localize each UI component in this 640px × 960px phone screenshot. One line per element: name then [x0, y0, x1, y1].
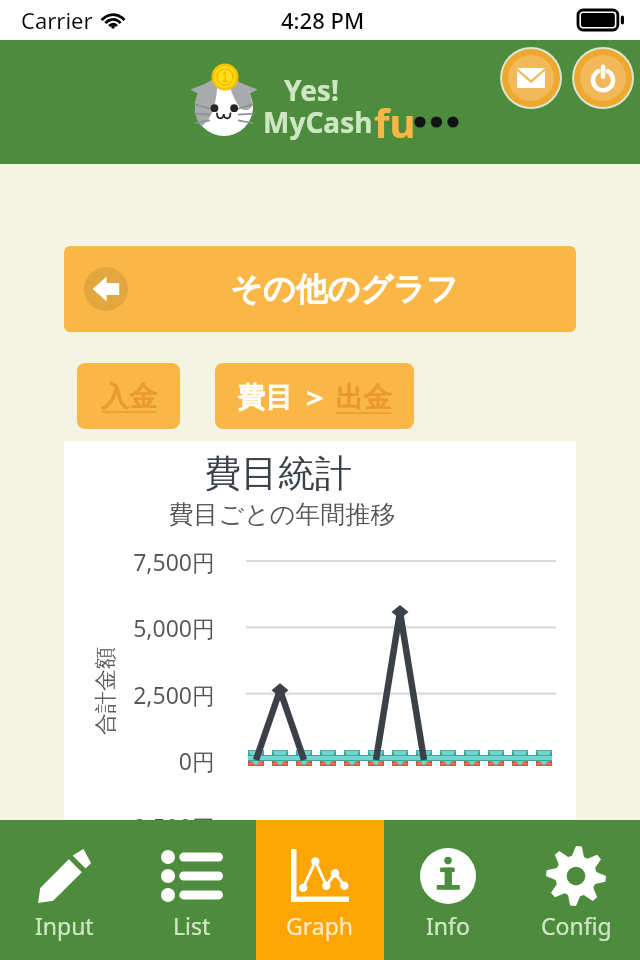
button[interactable]: Input	[0, 820, 128, 960]
staticText: 5,000円	[133, 612, 215, 643]
staticText: 合計金額	[92, 647, 120, 735]
staticText: Carrier	[21, 5, 93, 35]
staticText: 費目 ＞ 出金	[237, 377, 392, 415]
button[interactable]: Info	[384, 820, 512, 960]
staticText: Config	[541, 910, 612, 941]
button[interactable]: List	[128, 820, 256, 960]
button[interactable]: 入金	[77, 363, 180, 429]
staticText: 7,500円	[133, 546, 215, 577]
staticText: Info	[426, 910, 470, 941]
staticText: Input	[35, 910, 94, 941]
button[interactable]: Config	[512, 820, 640, 960]
staticText: -2,500円	[125, 811, 215, 842]
staticText: List	[173, 910, 211, 941]
staticText: 費目統計	[22, 450, 534, 497]
button[interactable]: Back	[84, 267, 128, 311]
staticText: Graph	[286, 910, 354, 941]
staticText: 0円	[178, 745, 215, 776]
staticText: 費目ごとの年間推移	[26, 499, 538, 530]
button[interactable]: Power	[574, 49, 632, 107]
staticText: 2,500円	[133, 679, 215, 710]
staticText: MyCash	[263, 103, 373, 141]
staticText: 4:28 PM	[281, 5, 365, 35]
staticText: 入金	[101, 379, 157, 414]
button[interactable]: その他のグラフ	[64, 246, 576, 332]
staticText: fu	[374, 95, 416, 149]
staticText: Yes!	[284, 71, 339, 109]
staticText: その他のグラフ	[230, 269, 459, 309]
button[interactable]: Mail	[502, 49, 560, 107]
button[interactable]: 費目 ＞ 出金	[215, 363, 414, 429]
button[interactable]: Graph	[256, 820, 384, 960]
